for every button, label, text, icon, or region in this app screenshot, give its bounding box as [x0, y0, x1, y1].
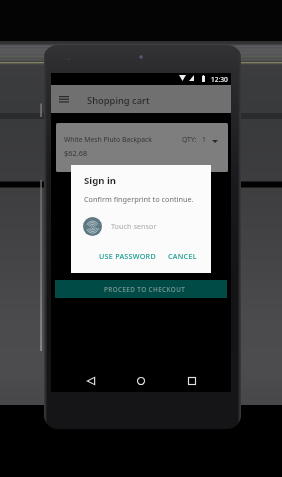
staticText: PROCEED TO CHECKOUT — [104, 285, 186, 294]
staticText: USE PASSWORD — [99, 251, 156, 261]
button[interactable]: Back — [80, 370, 102, 392]
staticText: Shopping cart — [87, 94, 150, 107]
staticText: Sign in — [84, 174, 117, 187]
button[interactable]: CANCEL — [165, 247, 199, 264]
button[interactable]: Open navigation menu — [53, 85, 75, 113]
staticText: 12:30 — [211, 75, 228, 84]
staticText: Touch sensor — [111, 221, 157, 231]
staticText: CANCEL — [168, 251, 197, 261]
staticText: 1 — [202, 135, 206, 144]
button[interactable]: PROCEED TO CHECKOUT — [55, 280, 227, 298]
button[interactable]: USE PASSWORD — [97, 247, 157, 264]
button[interactable]: White Mesh Pluto Backpack — [56, 123, 228, 172]
staticText: Confirm fingerprint to continue. — [84, 194, 194, 204]
button[interactable]: Open navigation menu — [51, 85, 231, 113]
staticText: White Mesh Pluto Backpack — [64, 135, 152, 144]
button[interactable]: Home — [130, 370, 152, 392]
button[interactable]: Recent apps — [181, 370, 203, 392]
button[interactable]: Change quantity — [208, 134, 222, 148]
staticText: $62.68 — [64, 148, 88, 158]
staticText: QTY: — [182, 135, 197, 144]
